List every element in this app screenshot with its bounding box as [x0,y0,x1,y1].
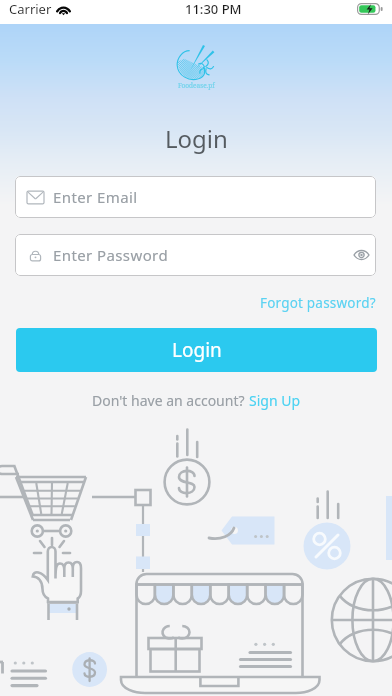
staticText: Foodease.pf [178,81,215,90]
button[interactable]: Forgot password? [254,291,392,315]
button[interactable]: Sign Up [249,391,301,410]
staticText: Enter Password [53,245,169,265]
button[interactable]: Enter Password [15,234,376,276]
button[interactable]: Enter Email [15,176,376,218]
staticText: Carrier [9,0,52,18]
button[interactable]: Login [16,328,377,372]
button[interactable]: Show password [348,242,374,268]
staticText: Enter Email [53,187,138,207]
staticText: 11:30 PM [185,0,242,18]
staticText: Don't have an account? [92,391,249,410]
staticText: Login [172,337,222,363]
staticText: Login [165,122,228,155]
